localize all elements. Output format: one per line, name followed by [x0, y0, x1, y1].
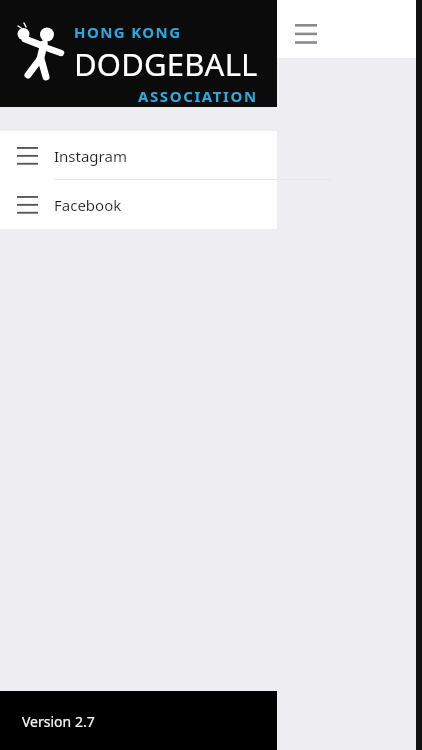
button[interactable]: Instagram: [0, 131, 277, 180]
staticText: ASSOCIATION: [138, 86, 258, 106]
staticText: Version 2.7: [22, 712, 95, 731]
staticText: Facebook: [54, 195, 122, 215]
staticText: Instagram: [54, 146, 127, 166]
staticText: HONG KONG: [74, 22, 182, 42]
staticText: DODGEBALL: [74, 43, 258, 85]
button[interactable]: Open navigation menu: [288, 16, 324, 52]
button[interactable]: Facebook: [0, 180, 277, 229]
